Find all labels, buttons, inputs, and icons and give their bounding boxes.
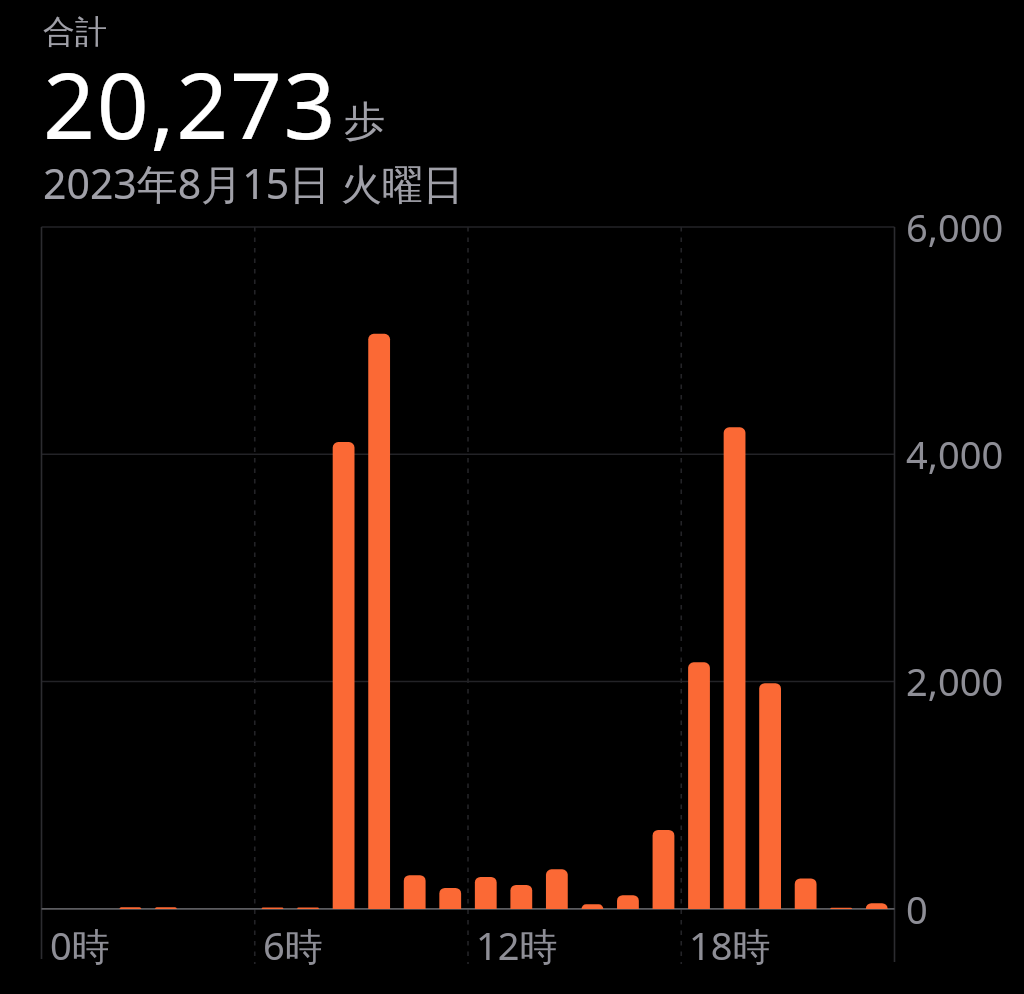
staticText: 2,000 <box>906 655 1004 707</box>
staticText: 6,000 <box>906 201 1004 253</box>
staticText: 合計 <box>43 12 107 52</box>
staticText: 0 <box>906 883 928 935</box>
staticText: 6時 <box>263 919 323 971</box>
staticText: 18時 <box>689 919 771 971</box>
staticText: 20,273 <box>43 42 338 166</box>
button[interactable]: Hourly step count chart <box>0 0 1024 994</box>
staticText: 歩 <box>344 96 385 148</box>
staticText: 2023年8月15日 火曜日 <box>43 155 464 211</box>
staticText: 4,000 <box>906 428 1004 480</box>
staticText: 0時 <box>50 919 110 971</box>
button[interactable]: 合計 <box>36 4 466 216</box>
staticText: 12時 <box>476 919 558 971</box>
